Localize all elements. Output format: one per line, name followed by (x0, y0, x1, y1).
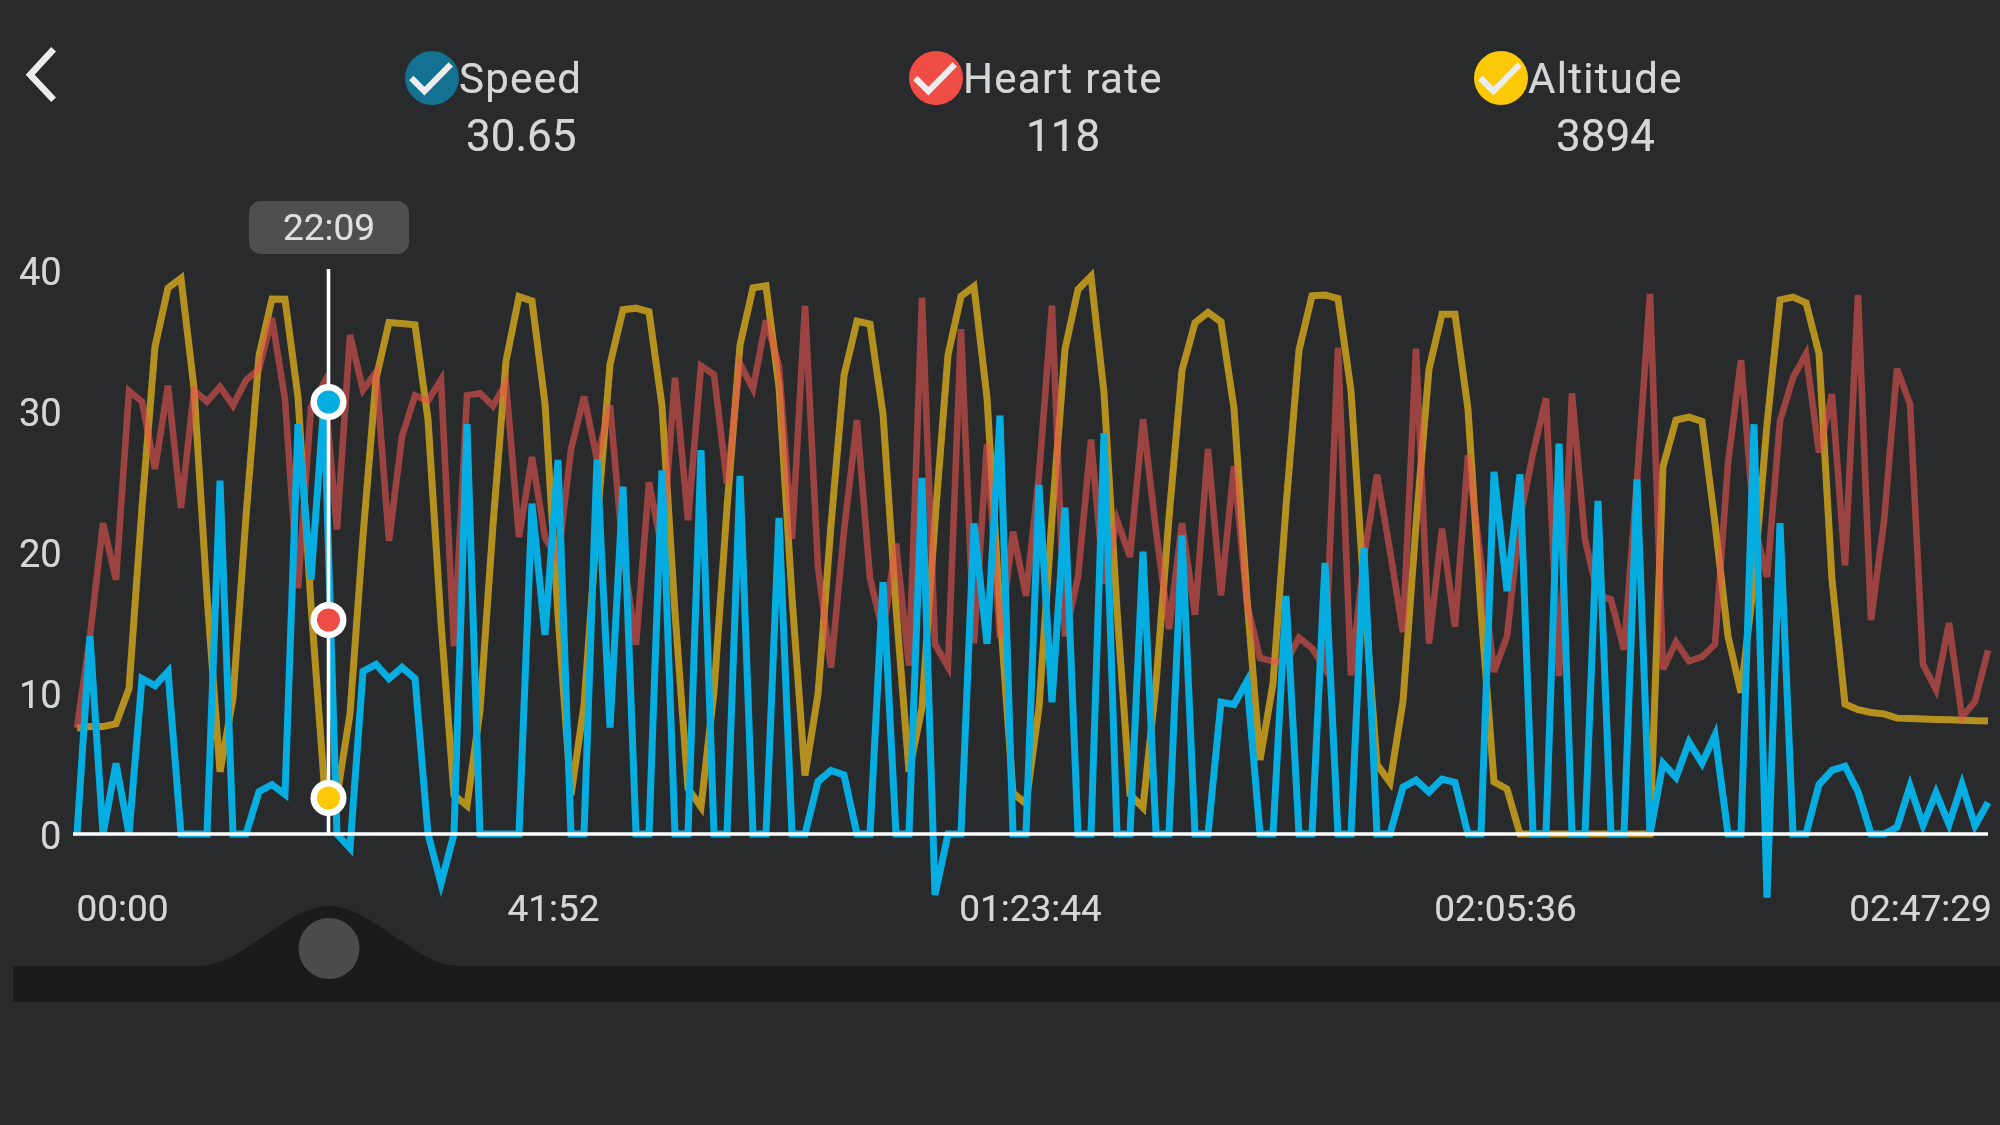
staticText: Speed (459, 54, 583, 103)
button[interactable] (0, 0, 2000, 1125)
staticText: 22:09 (283, 206, 376, 249)
staticText: 118 (1026, 110, 1101, 162)
staticText: 41:52 (507, 887, 600, 930)
staticText: 3894 (1556, 110, 1655, 162)
staticText: 10 (19, 673, 62, 718)
staticText: 02:47:29 (1849, 887, 1992, 930)
staticText: 00:00 (76, 887, 169, 930)
staticText: 30.65 (466, 110, 577, 162)
staticText: 40 (19, 250, 62, 295)
staticText: 0 (40, 814, 62, 859)
staticText: 30 (19, 391, 62, 436)
staticText: Altitude (1528, 54, 1683, 103)
staticText: Heart rate (963, 54, 1163, 103)
button[interactable]: Back (0, 28, 92, 120)
staticText: 02:05:36 (1434, 887, 1577, 930)
staticText: 20 (19, 532, 62, 577)
staticText: 01:23:44 (959, 887, 1102, 930)
button[interactable]: Heart rate (736, 51, 1336, 157)
button[interactable]: Altitude (1278, 51, 1878, 157)
button[interactable]: 22:09 (249, 201, 409, 254)
button[interactable]: Speed (194, 51, 794, 157)
